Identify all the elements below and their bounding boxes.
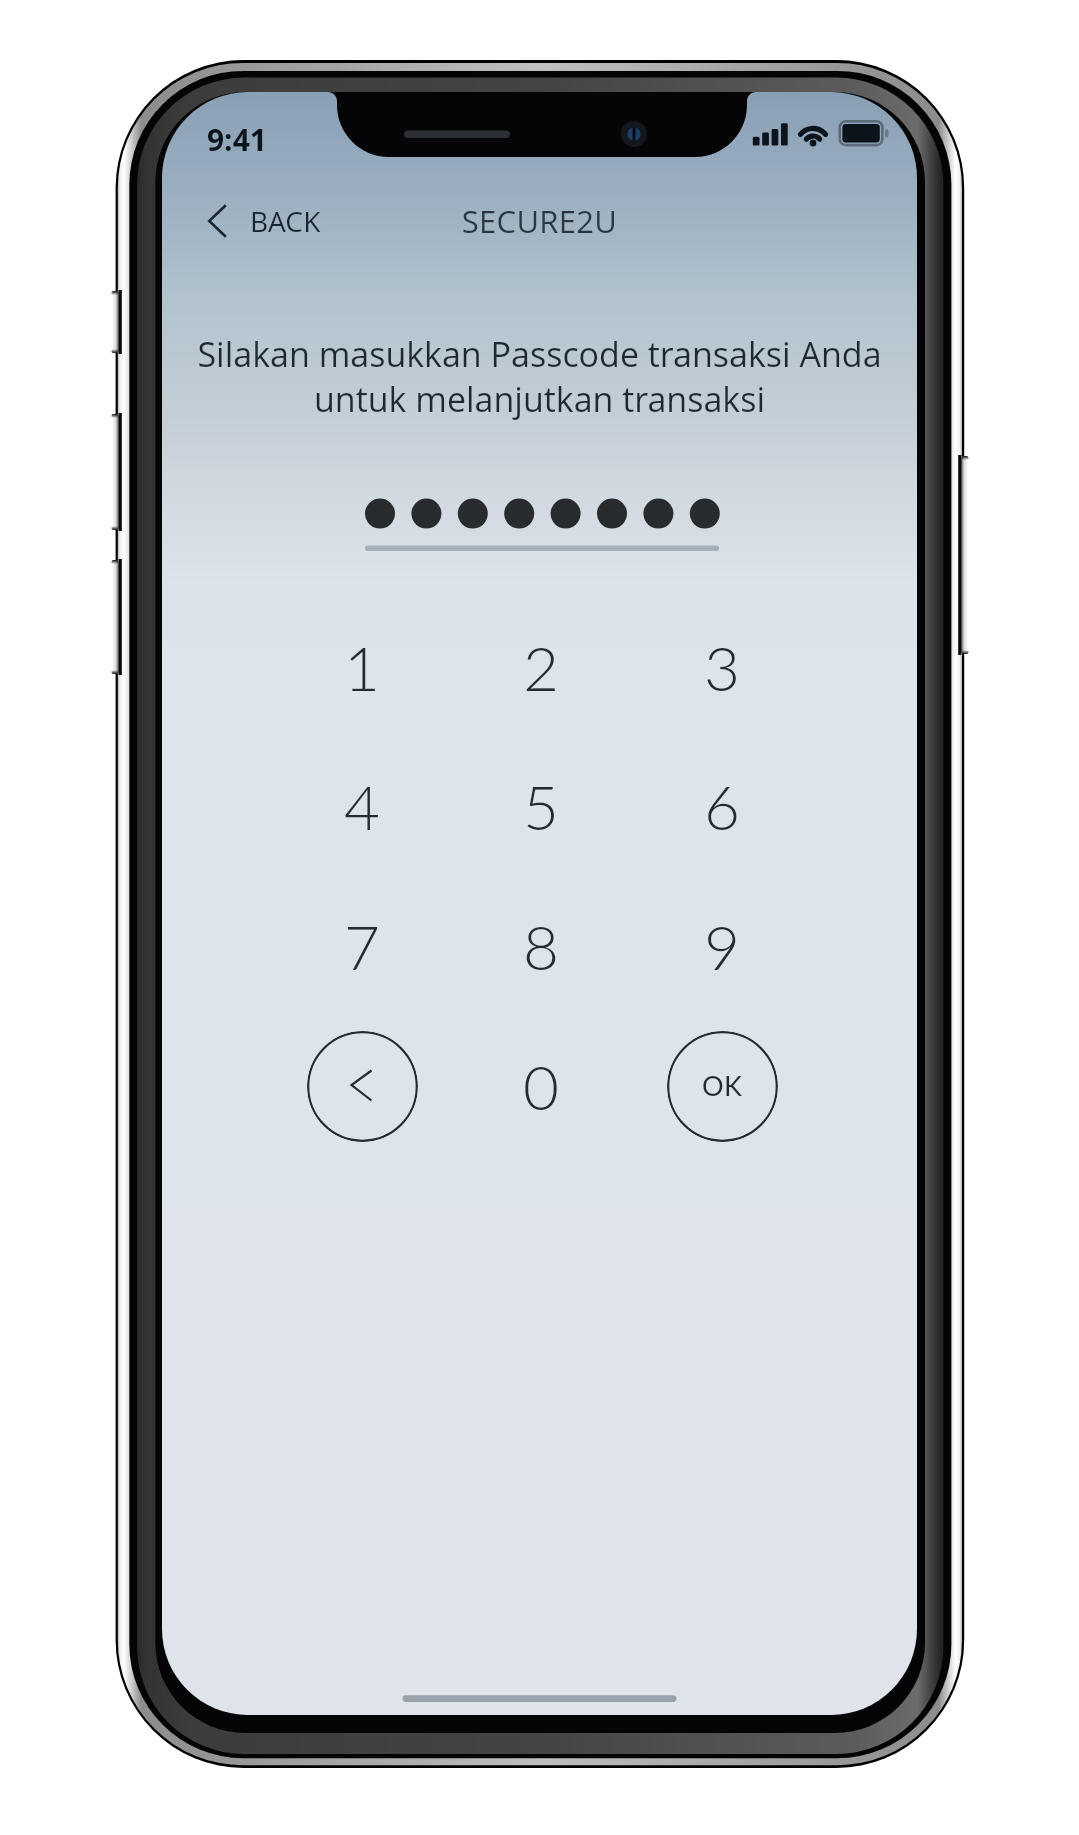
button[interactable]: BACK [204,197,325,245]
staticText: 4 [344,769,380,843]
button[interactable]: 7 [277,861,447,1031]
button[interactable]: 4 [277,721,447,891]
staticText: BACK [250,202,321,240]
staticText: 3 [704,630,740,704]
button[interactable]: 1 [277,582,447,752]
staticText: SECURE2U [162,200,917,242]
staticText: 0 [523,1049,559,1123]
staticText: Silakan masukkan Passcode transaksi Anda… [162,331,917,422]
button[interactable]: OK [667,1031,778,1142]
button[interactable]: 2 [456,582,626,752]
staticText: 7 [344,909,380,983]
button[interactable]: 0 [456,1001,626,1171]
button[interactable]: Backspace [307,1031,418,1142]
button[interactable]: 5 [456,721,626,891]
staticText: 9 [704,909,740,983]
button[interactable]: 8 [456,861,626,1031]
staticText: 1 [344,630,380,704]
staticText: 5 [523,769,559,843]
staticText: 9:41 [207,119,267,160]
button[interactable]: 6 [637,721,807,891]
staticText: 2 [523,630,559,704]
button[interactable]: 3 [637,582,807,752]
staticText: 6 [704,769,740,843]
staticText: OK [702,1069,743,1101]
button[interactable]: 9 [637,861,807,1031]
staticText: 8 [523,909,559,983]
